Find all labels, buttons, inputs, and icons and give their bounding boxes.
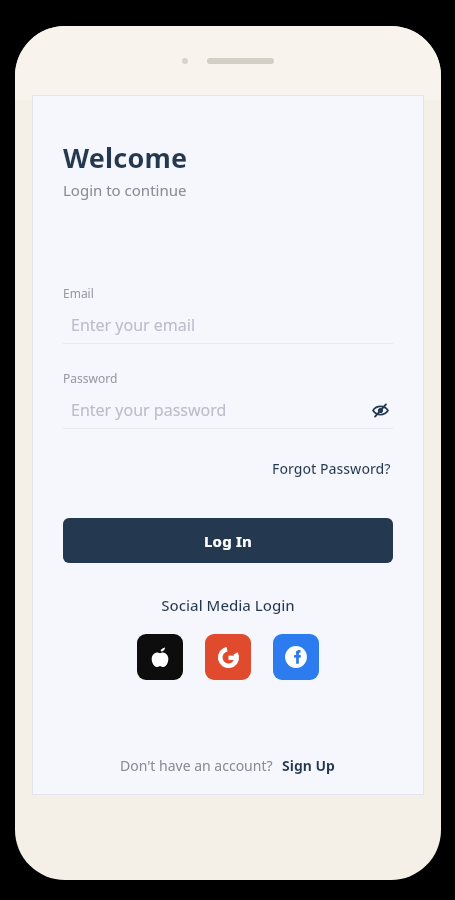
button[interactable]: Enter your email: [63, 312, 393, 338]
staticText: Log In: [204, 531, 252, 551]
button[interactable]: Log In: [63, 518, 393, 563]
staticText: Enter your email: [71, 314, 196, 336]
staticText: Social Media Login: [63, 595, 393, 615]
button[interactable]: Sign Up: [280, 753, 337, 778]
staticText: Sign Up: [282, 756, 335, 775]
button[interactable]: Sign in with Google: [205, 634, 251, 680]
staticText: Welcome: [63, 139, 188, 176]
button[interactable]: Show password: [367, 397, 393, 423]
staticText: Enter your password: [71, 399, 227, 421]
button[interactable]: Enter your password: [63, 399, 367, 421]
staticText: Forgot Password?: [272, 459, 391, 478]
button[interactable]: Sign in with Apple: [137, 634, 183, 680]
staticText: Email: [63, 285, 94, 301]
button[interactable]: Forgot Password?: [270, 456, 393, 481]
staticText: Login to continue: [63, 180, 187, 200]
button[interactable]: Sign in with Facebook: [273, 634, 319, 680]
staticText: Password: [63, 370, 118, 386]
staticText: Don't have an account?: [120, 756, 273, 775]
